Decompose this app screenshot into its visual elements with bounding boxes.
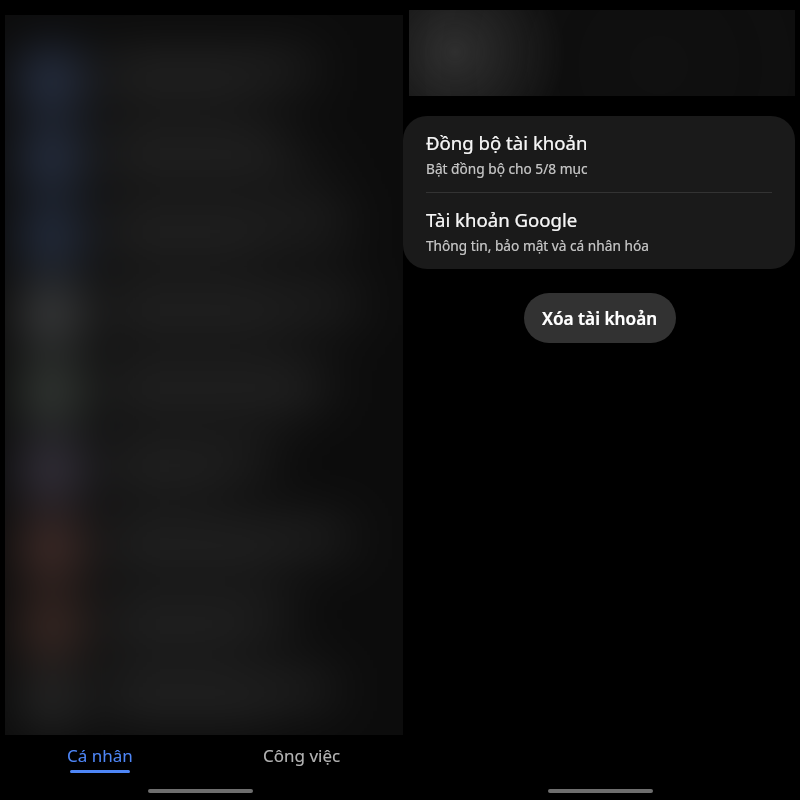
staticText: Tài khoản Google [426, 207, 578, 232]
staticText: Cá nhân [67, 744, 133, 767]
button[interactable]: Công việc [200, 735, 403, 785]
button[interactable]: Tài khoản Google [403, 193, 795, 269]
button[interactable]: Xóa tài khoản [524, 293, 676, 343]
staticText: Thông tin, bảo mật và cá nhân hóa [426, 236, 649, 255]
other: Home [148, 789, 253, 793]
staticText: Đồng bộ tài khoản [426, 130, 588, 155]
staticText: Công việc [263, 744, 341, 767]
other: Home [548, 789, 653, 793]
button[interactable]: Cá nhân [0, 735, 200, 785]
staticText: Bật đồng bộ cho 5/8 mục [426, 159, 588, 178]
button[interactable]: Đồng bộ tài khoản [403, 116, 795, 192]
staticText: Xóa tài khoản [542, 307, 658, 330]
